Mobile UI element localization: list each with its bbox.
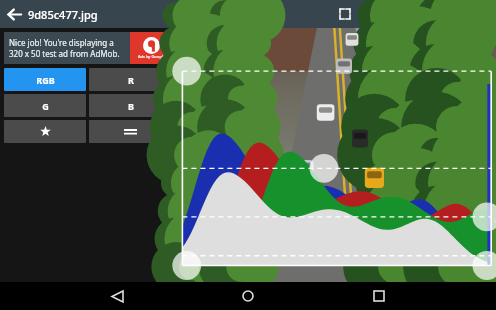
button[interactable]: 64% — [358, 6, 396, 22]
button[interactable]: Menu — [89, 120, 172, 143]
staticText: Ads by Google — [138, 54, 165, 59]
button[interactable]: Back — [0, 0, 28, 28]
button[interactable]: RGB — [4, 68, 86, 91]
button[interactable]: APPLY — [426, 8, 474, 21]
staticText: B — [128, 100, 134, 112]
staticText: 64% — [362, 6, 382, 20]
staticText: 9d85c477.jpg — [28, 7, 98, 22]
button[interactable]: Fit to screen — [332, 1, 358, 27]
button[interactable]: Presets — [4, 120, 86, 143]
button[interactable]: Recent apps — [365, 282, 393, 310]
button[interactable]: Nice job! You're displaying a 320 x 50 t… — [4, 32, 172, 64]
staticText: RGB — [36, 74, 55, 86]
staticText: R — [128, 74, 134, 86]
staticText: G — [42, 100, 49, 112]
button[interactable]: Home — [234, 282, 262, 310]
button[interactable]: R — [89, 68, 172, 91]
staticText: Nice job! You're displaying a 320 x 50 t… — [9, 37, 127, 59]
button[interactable]: B — [89, 94, 172, 117]
button[interactable]: G — [4, 94, 86, 117]
button[interactable]: Compare — [400, 1, 426, 27]
button[interactable]: Back — [103, 282, 131, 310]
